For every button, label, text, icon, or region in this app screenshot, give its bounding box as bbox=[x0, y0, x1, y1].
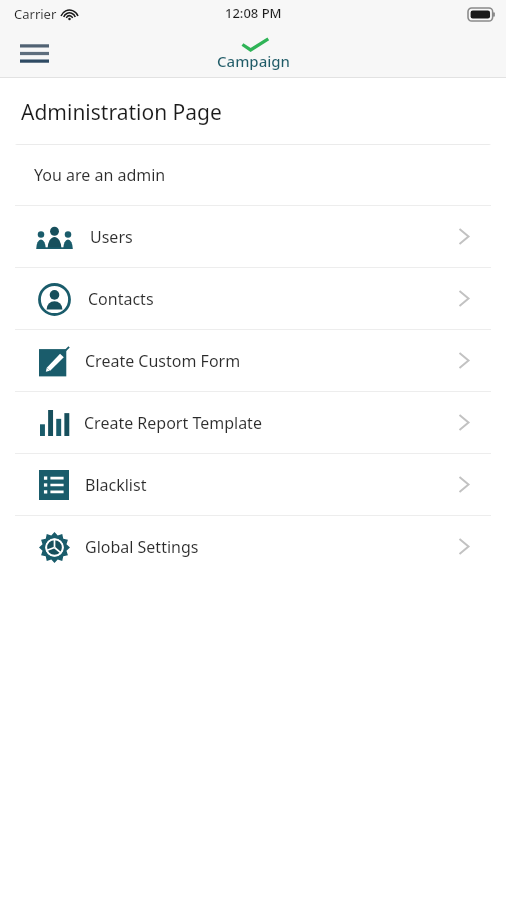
staticText: 12:08 PM bbox=[225, 4, 282, 22]
staticText: You are an admin bbox=[34, 164, 166, 186]
button[interactable]: Contacts bbox=[15, 268, 491, 329]
staticText: Blacklist bbox=[85, 474, 147, 496]
staticText: Administration Page bbox=[21, 98, 222, 127]
staticText: Carrier bbox=[14, 5, 57, 23]
button[interactable]: Global Settings bbox=[15, 516, 491, 577]
staticText: Create Report Template bbox=[84, 412, 262, 434]
staticText: Contacts bbox=[88, 288, 154, 310]
button[interactable]: Create Custom Form bbox=[15, 330, 491, 391]
staticText: Campaign bbox=[217, 51, 290, 71]
staticText: Global Settings bbox=[85, 536, 199, 558]
button[interactable]: Users bbox=[15, 206, 491, 267]
staticText: Create Custom Form bbox=[85, 350, 241, 372]
staticText: Users bbox=[90, 226, 133, 248]
button[interactable]: Blacklist bbox=[15, 454, 491, 515]
button[interactable]: Create Report Template bbox=[15, 392, 491, 453]
button[interactable]: Menu bbox=[12, 33, 56, 73]
